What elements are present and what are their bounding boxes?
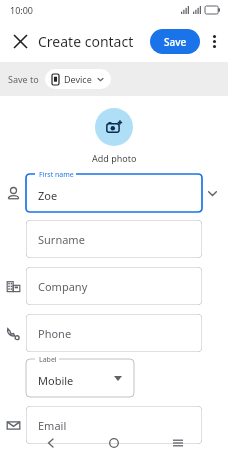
button[interactable]: Back: [38, 430, 64, 456]
button[interactable]: Close: [6, 27, 34, 55]
button[interactable]: Home: [101, 430, 127, 456]
staticText: Label: [39, 355, 57, 365]
staticText: Mobile: [38, 373, 74, 388]
button[interactable]: Device: [45, 69, 111, 89]
staticText: First name: [39, 170, 74, 180]
button[interactable]: [26, 174, 202, 212]
staticText: Zoe: [38, 188, 58, 203]
button[interactable]: More options: [202, 29, 226, 53]
button[interactable]: Email: [26, 406, 202, 444]
button[interactable]: Expand name fields: [202, 183, 222, 203]
staticText: Phone: [38, 326, 72, 341]
button[interactable]: Add photo: [95, 108, 133, 146]
staticText: Company: [38, 279, 88, 294]
staticText: Save to: [8, 73, 39, 85]
button[interactable]: Recent apps: [165, 430, 191, 456]
staticText: Create contact: [38, 32, 134, 51]
button[interactable]: Surname: [26, 220, 202, 258]
button[interactable]: Company: [26, 267, 202, 305]
button[interactable]: [26, 359, 134, 397]
staticText: Surname: [38, 232, 85, 247]
staticText: 10:00: [10, 4, 34, 16]
staticText: Device: [64, 73, 92, 85]
button[interactable]: Save: [150, 29, 200, 54]
staticText: Email: [38, 418, 67, 433]
staticText: Save: [164, 35, 187, 49]
button[interactable]: Add photo: [92, 152, 137, 164]
button[interactable]: Phone: [26, 314, 202, 352]
